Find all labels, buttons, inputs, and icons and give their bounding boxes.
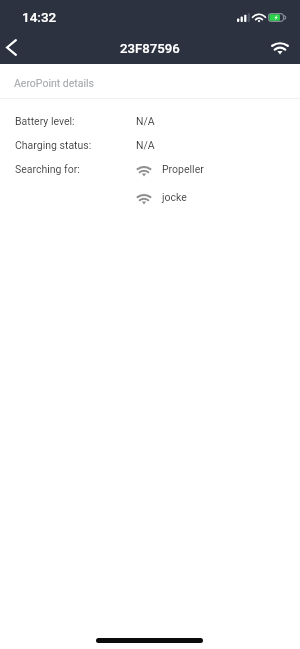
staticText: N/A — [136, 115, 155, 127]
staticText: jocke — [162, 191, 187, 203]
staticText: 23F87596 — [120, 41, 180, 56]
staticText: Searching for: — [15, 163, 80, 175]
staticText: Battery level: — [15, 115, 75, 127]
button[interactable]: jocke — [0, 189, 300, 205]
button[interactable]: Searching for: — [0, 161, 300, 177]
button[interactable]: Charging status: — [0, 137, 300, 153]
button[interactable]: Battery level: — [0, 113, 300, 129]
staticText: Charging status: — [15, 139, 92, 151]
staticText: N/A — [136, 139, 155, 151]
staticText: Propeller — [162, 163, 204, 175]
button[interactable]: Wi-Fi — [262, 28, 298, 64]
staticText: 14:32 — [22, 9, 57, 25]
staticText: AeroPoint details — [14, 77, 94, 89]
button[interactable]: Back — [0, 28, 29, 64]
